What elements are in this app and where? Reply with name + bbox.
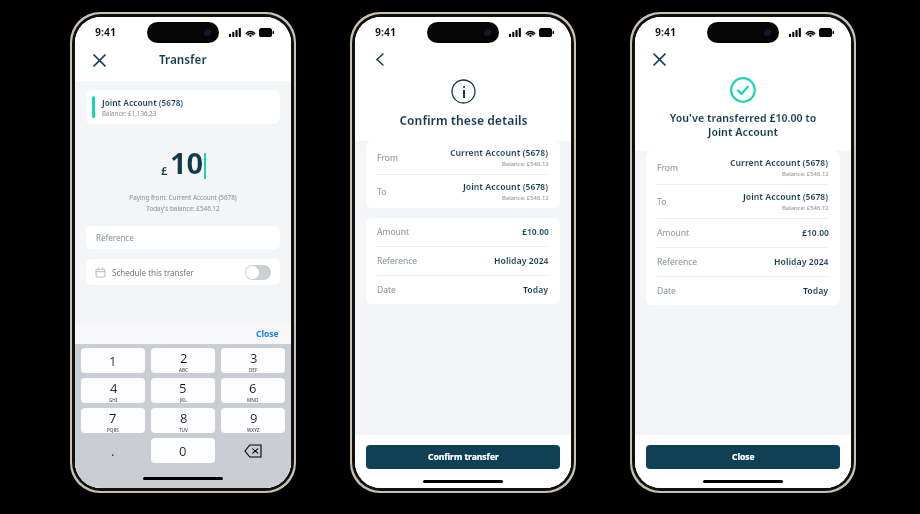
staticText: Close xyxy=(732,451,755,463)
staticText: Date xyxy=(377,284,396,296)
staticText: Confirm transfer xyxy=(428,451,499,463)
staticText: Joint Account (5678) xyxy=(463,181,549,193)
staticText: 0 xyxy=(179,442,187,460)
button[interactable]: Close xyxy=(647,47,671,71)
staticText: JKL xyxy=(180,397,187,403)
button[interactable]: . xyxy=(78,438,148,463)
staticText: Reference xyxy=(377,255,418,267)
staticText: 9:41 xyxy=(655,25,676,39)
button[interactable]: 6 xyxy=(221,378,285,403)
staticText: £10.00 xyxy=(522,226,549,238)
button[interactable]: 2 xyxy=(151,348,215,373)
button[interactable]: 4 xyxy=(81,378,145,403)
staticText: Joint Account (5678) xyxy=(102,97,184,108)
staticText: Balance: £546.12 xyxy=(782,170,829,178)
staticText: Balance: £546.12 xyxy=(502,160,549,168)
staticText: 8 xyxy=(180,409,188,427)
staticText: Transfer xyxy=(159,52,207,68)
button[interactable]: Close xyxy=(256,328,279,340)
staticText: ABC xyxy=(179,367,188,373)
staticText: Current Account (5678) xyxy=(730,157,829,169)
staticText: 9:41 xyxy=(95,25,116,39)
staticText: Balance: £546.12 xyxy=(502,194,549,202)
staticText: DEF xyxy=(249,367,258,373)
staticText: You've transferred £10.00 to Joint Accou… xyxy=(657,111,829,139)
staticText: WXYZ xyxy=(247,427,260,433)
button[interactable]: Joint Account (5678) xyxy=(86,90,280,124)
staticText: From xyxy=(377,152,398,164)
staticText: Confirm these details xyxy=(399,112,528,128)
staticText: 4 xyxy=(110,379,118,397)
staticText: Holiday 2024 xyxy=(494,255,549,267)
staticText: 1 xyxy=(109,352,117,370)
staticText: GHI xyxy=(109,397,118,403)
staticText: Balance: £546.12 xyxy=(782,204,829,212)
staticText: 3 xyxy=(250,349,258,367)
staticText: Holiday 2024 xyxy=(774,256,829,268)
button[interactable]: 3 xyxy=(221,348,285,373)
button[interactable]: Confirm transfer xyxy=(366,445,560,469)
staticText: Amount xyxy=(377,226,410,238)
button[interactable]: 9 xyxy=(221,408,285,433)
staticText: Date xyxy=(657,285,676,297)
staticText: Current Account (5678) xyxy=(450,147,549,159)
staticText: 5 xyxy=(179,379,187,397)
staticText: Reference xyxy=(657,256,698,268)
staticText: Amount xyxy=(657,227,690,239)
staticText: 10 xyxy=(170,143,204,182)
staticText: PQRS xyxy=(107,427,119,433)
button[interactable]: 5 xyxy=(151,378,215,403)
staticText: 6 xyxy=(249,379,257,397)
staticText: Reference xyxy=(96,232,134,243)
staticText: From xyxy=(657,162,678,174)
button[interactable]: Reference xyxy=(86,226,280,249)
staticText: 7 xyxy=(109,409,117,427)
staticText: 9:41 xyxy=(375,25,396,39)
staticText: Paying from: Current Account (5678) xyxy=(75,193,291,202)
staticText: To xyxy=(657,196,667,208)
button[interactable]: Close xyxy=(87,48,111,72)
button[interactable]: Back xyxy=(369,48,391,70)
button[interactable]: 8 xyxy=(151,408,215,433)
staticText: Today xyxy=(803,285,829,297)
staticText: To xyxy=(377,186,387,198)
button[interactable]: 7 xyxy=(81,408,145,433)
staticText: MNO xyxy=(247,397,259,403)
staticText: TUV xyxy=(179,427,188,433)
staticText: Today's balance: £546.12 xyxy=(75,204,291,213)
staticText: Today xyxy=(523,284,549,296)
button[interactable]: Close xyxy=(646,445,840,469)
staticText: £10.00 xyxy=(802,227,829,239)
staticText: Joint Account (5678) xyxy=(743,191,829,203)
staticText: Schedule this transfer xyxy=(112,267,194,278)
staticText: . xyxy=(111,442,115,460)
button[interactable]: 1 xyxy=(81,348,145,373)
staticText: 9 xyxy=(250,409,258,427)
staticText: 2 xyxy=(180,349,188,367)
button[interactable]: 0 xyxy=(151,438,215,463)
button[interactable]: Schedule this transfer xyxy=(86,259,280,285)
staticText: £ xyxy=(161,163,168,178)
staticText: Balance: £1,136.23 xyxy=(102,109,157,117)
button[interactable]: Delete xyxy=(218,438,288,463)
